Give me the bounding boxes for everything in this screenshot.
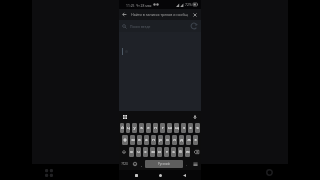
button[interactable]: Back: [120, 10, 129, 19]
staticText: Чт 28 мая: [136, 3, 152, 7]
button[interactable]: ?123: [119, 159, 130, 169]
button[interactable]: в: [137, 135, 142, 145]
button[interactable]: Refresh: [188, 20, 200, 32]
button[interactable]: н: [153, 123, 158, 133]
button[interactable]: э: [193, 135, 198, 145]
staticText: б: [179, 149, 182, 155]
staticText: ?123: [121, 162, 128, 166]
staticText: о: [166, 137, 169, 143]
button[interactable]: Backspace: [191, 147, 201, 157]
staticText: э: [194, 137, 197, 143]
staticText: а: [145, 137, 148, 143]
button[interactable]: Home: [153, 170, 167, 180]
button[interactable]: и: [157, 147, 162, 157]
button[interactable]: .: [184, 159, 189, 169]
button[interactable]: е: [146, 123, 151, 133]
button[interactable]: а: [144, 135, 149, 145]
button[interactable]: Recents: [129, 170, 143, 180]
staticText: Русский: [158, 162, 170, 166]
button[interactable]: п: [151, 135, 156, 145]
button[interactable]: с: [143, 147, 148, 157]
button[interactable]: ь: [171, 147, 176, 157]
button[interactable]: Shift: [119, 147, 128, 157]
staticText: ь: [172, 149, 175, 155]
button[interactable]: Поиск везде: [119, 20, 201, 32]
staticText: з: [183, 125, 185, 131]
staticText: Поиск везде: [130, 24, 151, 29]
button[interactable]: Clear: [190, 10, 199, 19]
staticText: ч: [137, 149, 140, 155]
button[interactable]: г: [160, 123, 165, 133]
button[interactable]: ш: [167, 123, 172, 133]
button[interactable]: ,: [139, 159, 144, 169]
button[interactable]: щ: [174, 123, 179, 133]
staticText: .: [186, 162, 187, 167]
button[interactable]: б: [178, 147, 183, 157]
staticText: х: [189, 125, 192, 131]
button[interactable]: я: [129, 147, 134, 157]
button[interactable]: у: [132, 123, 137, 133]
staticText: г: [162, 125, 164, 131]
button[interactable]: з: [181, 123, 186, 133]
button[interactable]: х: [188, 123, 193, 133]
button[interactable]: Back: [119, 9, 201, 20]
button[interactable]: л: [172, 135, 177, 145]
button[interactable]: т: [164, 147, 169, 157]
staticText: у: [133, 125, 136, 131]
button[interactable]: ф: [122, 135, 128, 145]
staticText: я: [130, 149, 133, 155]
staticText: ъ: [196, 125, 199, 131]
staticText: ы: [131, 137, 135, 143]
staticText: к: [140, 125, 143, 131]
button[interactable]: д: [179, 135, 184, 145]
button[interactable]: й: [120, 123, 124, 133]
button[interactable]: ю: [185, 147, 190, 157]
staticText: ж: [187, 137, 191, 143]
button[interactable]: к: [139, 123, 144, 133]
button[interactable]: ы: [130, 135, 135, 145]
button[interactable]: м: [150, 147, 155, 157]
staticText: е: [147, 125, 150, 131]
button[interactable]: Voice input: [191, 113, 199, 121]
staticText: с: [144, 149, 147, 155]
staticText: й: [121, 125, 124, 131]
button[interactable]: Record: [262, 165, 277, 180]
button[interactable]: о: [165, 135, 170, 145]
staticText: ,: [141, 162, 142, 167]
button[interactable]: Apps: [42, 166, 56, 180]
button[interactable]: Emoji: [130, 159, 139, 169]
staticText: ю: [186, 149, 190, 155]
staticText: и: [158, 149, 161, 155]
staticText: р: [159, 137, 162, 143]
button[interactable]: Русский: [145, 160, 183, 168]
staticText: ш: [168, 125, 172, 131]
staticText: ф: [123, 137, 127, 143]
button[interactable]: ч: [136, 147, 141, 157]
button[interactable]: ъ: [195, 123, 200, 133]
button[interactable]: Enter: [189, 159, 201, 169]
staticText: н: [154, 125, 157, 131]
staticText: п: [152, 137, 155, 143]
button[interactable]: р: [158, 135, 163, 145]
staticText: 72%: [185, 2, 192, 7]
button[interactable]: ж: [186, 135, 191, 145]
staticText: 11:25: [126, 3, 135, 7]
button[interactable]: ц: [126, 123, 130, 133]
staticText: д: [180, 137, 183, 143]
staticText: м: [151, 149, 155, 155]
staticText: Найти в записях треков и сообщ: [131, 12, 188, 17]
staticText: т: [166, 149, 168, 155]
button[interactable]: Clipboard: [121, 113, 129, 121]
staticText: в: [138, 137, 141, 143]
staticText: л: [173, 137, 176, 143]
staticText: щ: [175, 125, 179, 131]
button[interactable]: Back: [177, 170, 191, 180]
staticText: ц: [127, 125, 130, 131]
